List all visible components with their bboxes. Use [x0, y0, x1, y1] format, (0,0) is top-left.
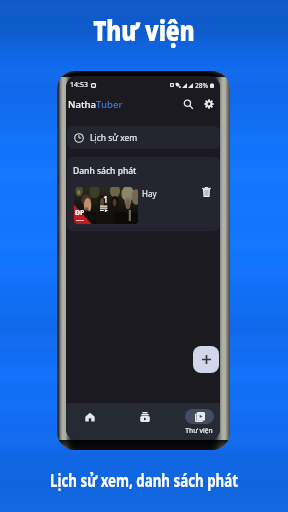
staticText: Lịch sử xem, danh sách phát: [50, 468, 238, 493]
button[interactable]: Lịch sử xem: [67, 126, 220, 149]
staticText: 14:53: [70, 80, 88, 90]
staticText: NathaTuber: [68, 98, 123, 111]
button[interactable]: Settings: [201, 96, 217, 112]
staticText: 1: [103, 193, 109, 205]
button[interactable]: Search: [180, 96, 196, 112]
button[interactable]: ĐP: [67, 185, 220, 223]
staticText: 28%: [195, 81, 209, 90]
staticText: Thư viện: [185, 426, 213, 435]
button[interactable]: Trang chủ: [66, 403, 114, 424]
staticText: Hay: [142, 188, 157, 199]
staticText: Thư viện: [93, 12, 195, 49]
button[interactable]: Kênh đăng ký: [119, 403, 169, 424]
staticText: ĐP: [75, 208, 85, 218]
staticText: Lịch sử xem: [90, 132, 138, 144]
button[interactable]: Delete: [199, 185, 213, 199]
staticText: Danh sách phát: [73, 165, 137, 177]
button[interactable]: Thư viện: [174, 403, 220, 435]
button[interactable]: Add playlist: [193, 346, 219, 373]
